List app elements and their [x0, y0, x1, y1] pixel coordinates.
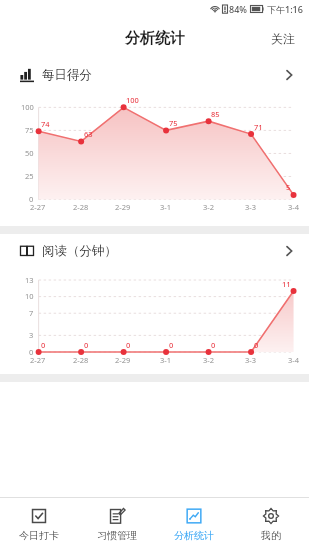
button[interactable]: Reading minutes chart [0, 234, 309, 268]
other: Reading minutes chart [20, 244, 34, 258]
staticText: 25 [25, 171, 34, 181]
staticText: 13 [25, 275, 34, 285]
staticText: 100 [126, 95, 139, 105]
other: Daily score chart [20, 68, 34, 82]
staticText: 0 [84, 340, 89, 350]
staticText: 3 [29, 330, 34, 340]
other: Open 阅读（分钟） [279, 241, 299, 261]
staticText: 我的 [261, 529, 281, 542]
staticText: 3-1 [160, 355, 171, 365]
staticText: 3-4 [288, 355, 299, 365]
staticText: 2-27 [30, 202, 46, 212]
staticText: 0 [169, 340, 174, 350]
staticText: 3-2 [203, 355, 214, 365]
staticText: 2-28 [73, 355, 89, 365]
staticText: 阅读（分钟） [42, 243, 117, 259]
staticText: 50 [25, 148, 34, 158]
staticText: 每日得分 [42, 67, 92, 83]
staticText: 0 [126, 340, 131, 350]
staticText: 下午1:16 [267, 3, 303, 15]
staticText: 0 [29, 194, 34, 204]
staticText: 85 [211, 109, 220, 119]
staticText: 今日打卡 [19, 529, 59, 542]
staticText: 74 [41, 119, 50, 129]
other: Open 每日得分 [279, 65, 299, 85]
button[interactable]: 我的 [232, 498, 309, 550]
staticText: 习惯管理 [97, 529, 137, 542]
staticText: 分析统计 [174, 529, 214, 542]
staticText: 3-4 [288, 202, 299, 212]
staticText: 0 [211, 340, 216, 350]
staticText: 75 [25, 125, 34, 135]
button[interactable]: 关注 [257, 22, 309, 55]
button[interactable]: 习惯管理 [78, 498, 155, 550]
staticText: 2-28 [73, 202, 89, 212]
staticText: 2-29 [115, 355, 131, 365]
staticText: 3-3 [245, 355, 256, 365]
staticText: 分析统计 [125, 29, 185, 48]
staticText: 7 [29, 308, 34, 318]
staticText: 0 [29, 347, 34, 357]
staticText: 关注 [271, 31, 295, 46]
staticText: 2-29 [115, 202, 131, 212]
staticText: 11 [282, 279, 291, 289]
button[interactable]: 分析统计 [155, 498, 232, 550]
staticText: 3-1 [160, 202, 171, 212]
staticText: 75 [169, 118, 178, 128]
staticText: 63 [84, 129, 93, 139]
staticText: 2-27 [30, 355, 46, 365]
staticText: 5 [286, 182, 291, 192]
staticText: 3-2 [203, 202, 214, 212]
staticText: 71 [254, 122, 263, 132]
staticText: 10 [25, 291, 34, 301]
staticText: 84% [229, 3, 247, 15]
button[interactable]: 今日打卡 [0, 498, 78, 550]
staticText: 3-3 [245, 202, 256, 212]
button[interactable]: Daily score chart [0, 58, 309, 92]
staticText: 0 [254, 340, 259, 350]
staticText: 0 [41, 340, 46, 350]
staticText: 100 [21, 102, 34, 112]
